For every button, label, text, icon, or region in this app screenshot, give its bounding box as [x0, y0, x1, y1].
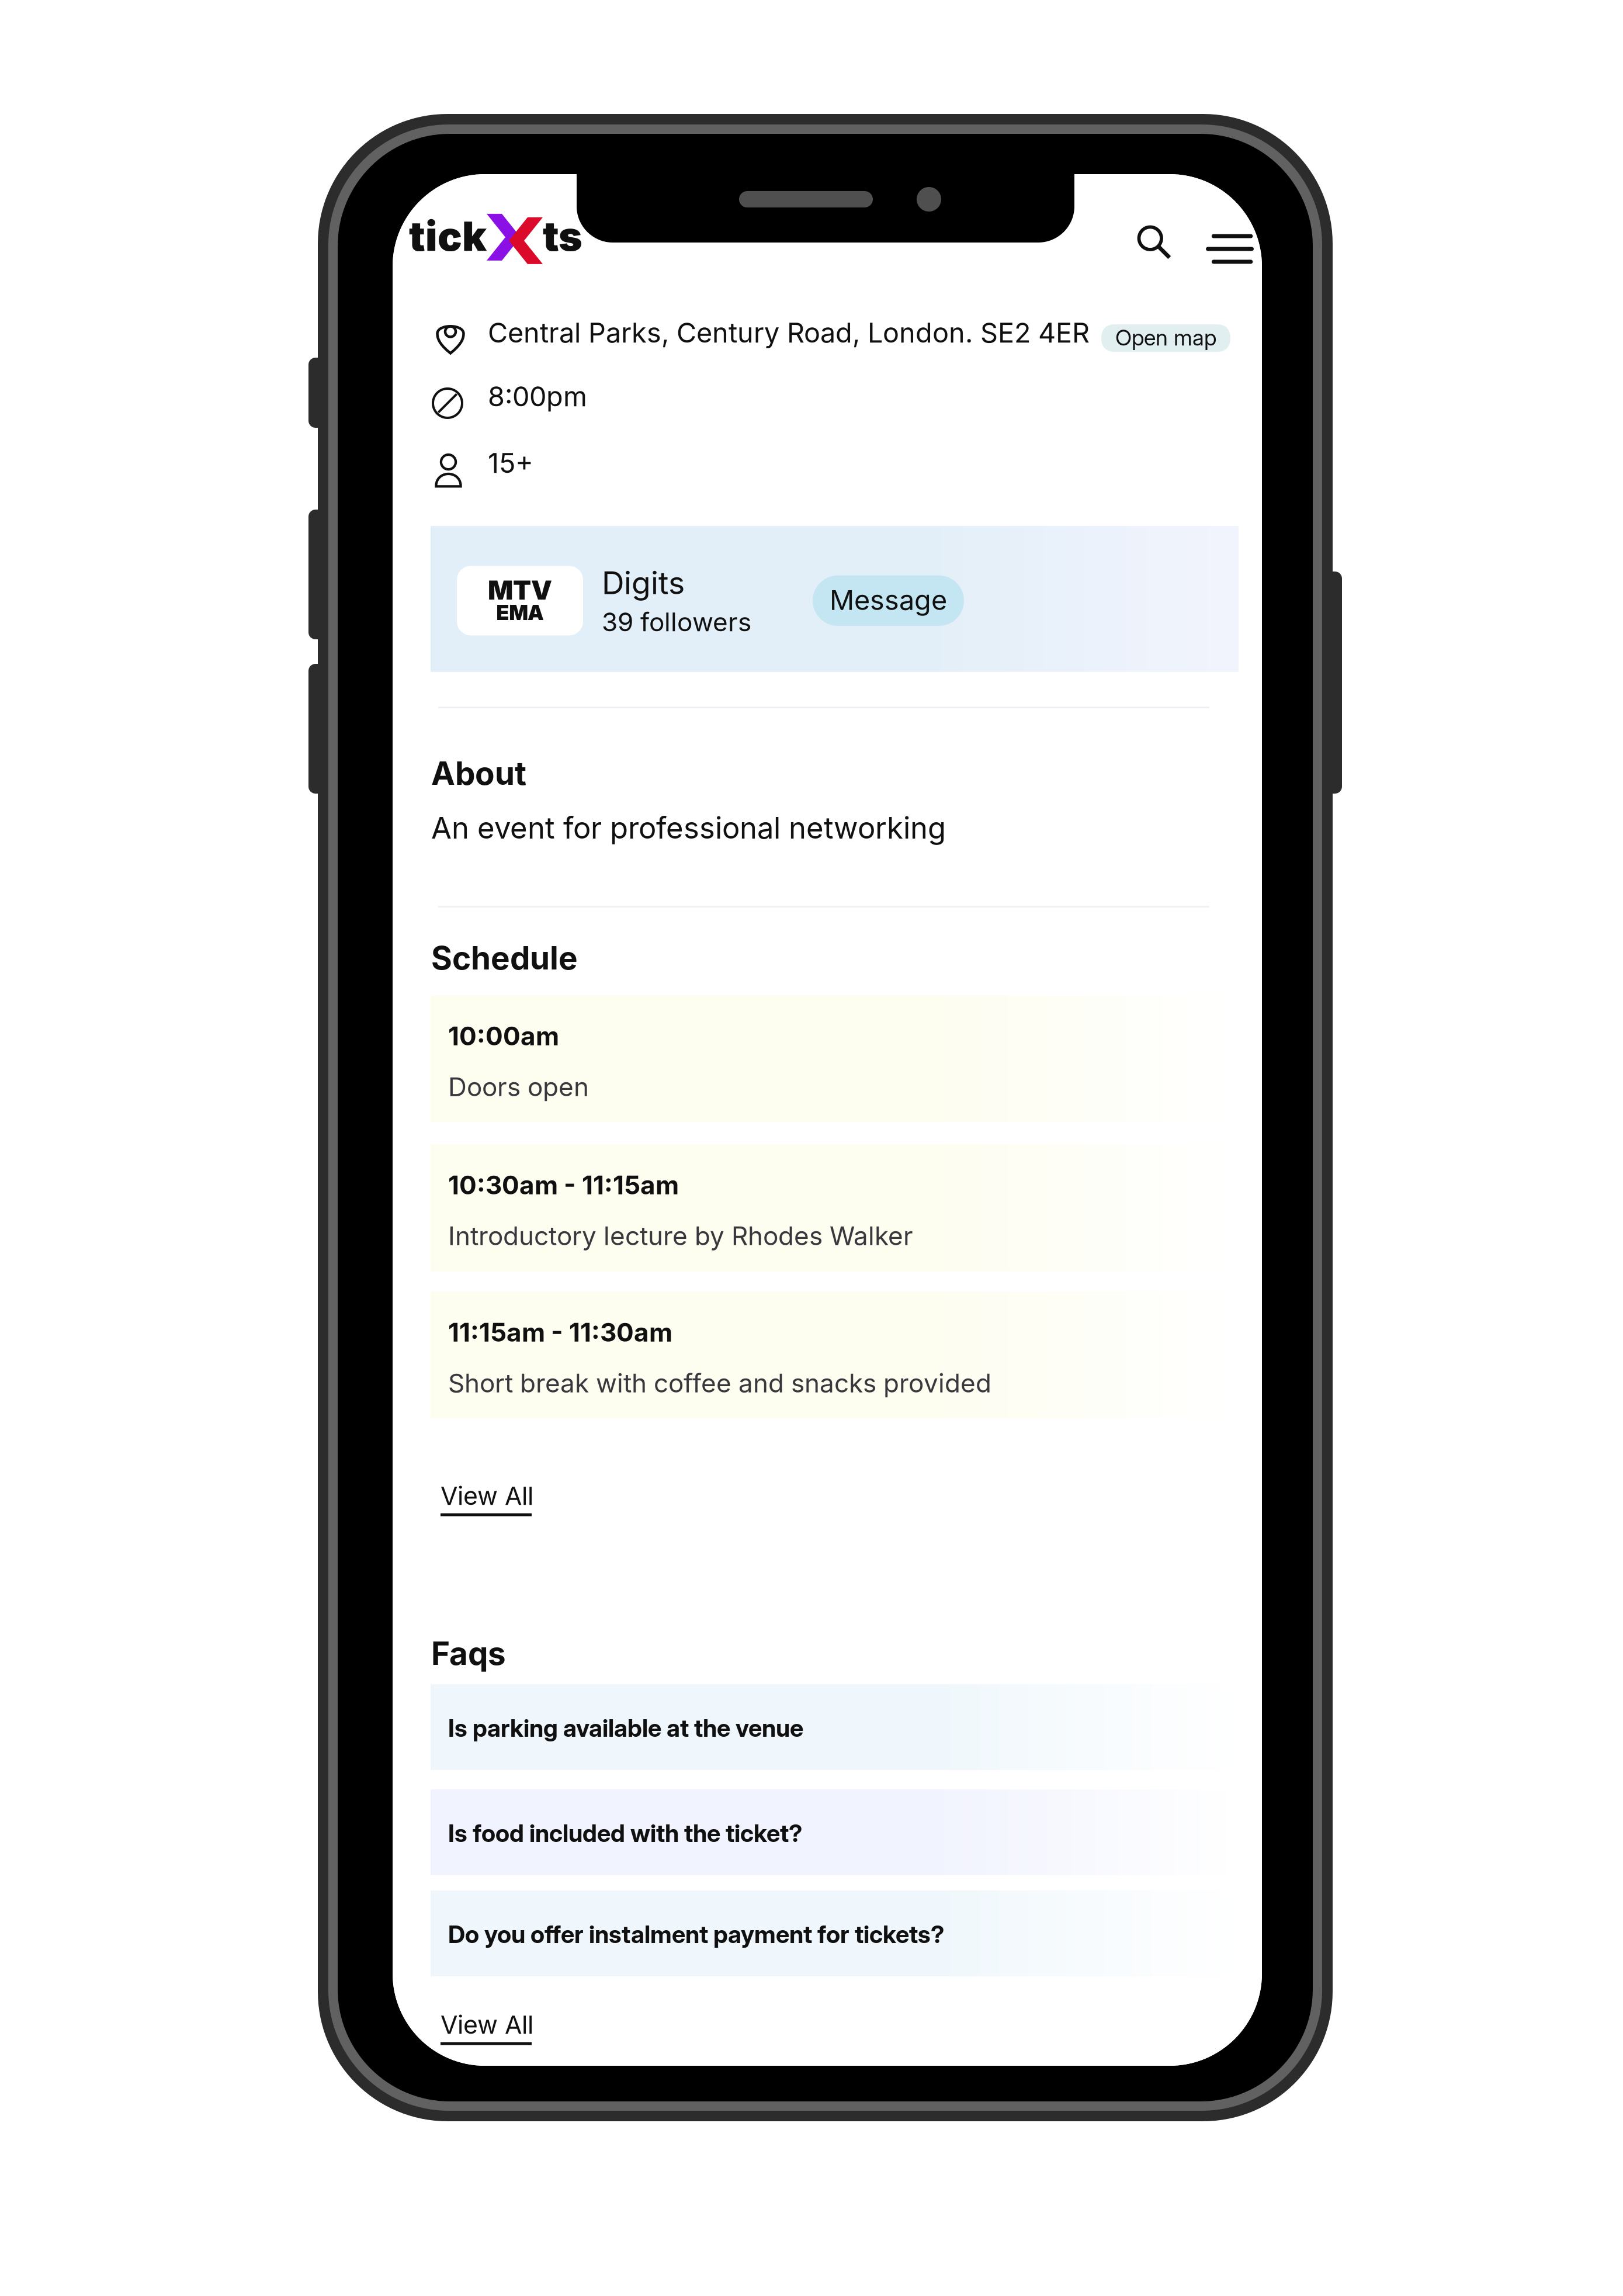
button[interactable]: Search	[1133, 221, 1177, 265]
staticText: View All	[441, 2010, 533, 2040]
staticText: ts	[543, 212, 582, 261]
staticText: Schedule	[431, 939, 578, 977]
button[interactable]: Message	[813, 575, 964, 626]
staticText: Doors open	[448, 1071, 589, 1102]
staticText: 15+	[488, 446, 533, 479]
staticText: Faqs	[431, 1634, 506, 1673]
staticText: tick	[409, 212, 487, 261]
button[interactable]: Menu	[1205, 231, 1255, 266]
staticText: 8:00pm	[488, 380, 587, 413]
button[interactable]: Open map	[1101, 324, 1230, 352]
staticText: 10:30am - 11:15am	[448, 1169, 679, 1200]
staticText: 10:00am	[448, 1020, 559, 1051]
button[interactable]: View All	[441, 1481, 533, 1516]
staticText: Message	[830, 584, 947, 617]
staticText: Is parking available at the venue	[448, 1713, 803, 1743]
staticText: Is food included with the ticket?	[448, 1819, 802, 1848]
staticText: View All	[441, 1481, 533, 1511]
staticText: Introductory lecture by Rhodes Walker	[448, 1220, 913, 1251]
button[interactable]: View All	[441, 2010, 533, 2045]
staticText: Central Parks, Century Road, London. SE2…	[488, 316, 1090, 349]
staticText: Open map	[1115, 324, 1216, 351]
staticText: An event for professional networking	[431, 810, 946, 846]
staticText: 39 followers	[602, 606, 751, 637]
staticText: EMA	[496, 600, 544, 625]
button[interactable]: Do you offer instalment payment for tick…	[431, 1890, 1239, 1976]
staticText: About	[431, 754, 526, 792]
staticText: MTV	[488, 574, 552, 606]
staticText: 11:15am - 11:30am	[448, 1317, 672, 1348]
button[interactable]: Is parking available at the venue	[431, 1684, 1239, 1770]
staticText: Do you offer instalment payment for tick…	[448, 1920, 944, 1949]
button[interactable]: Is food included with the ticket?	[431, 1789, 1239, 1875]
staticText: Short break with coffee and snacks provi…	[448, 1368, 991, 1399]
staticText: Digits	[602, 564, 685, 602]
